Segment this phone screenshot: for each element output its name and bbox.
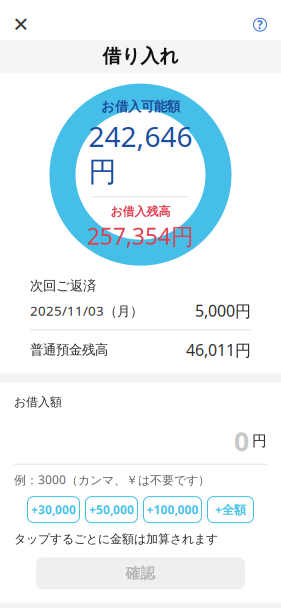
staticText: 借り入れ xyxy=(102,45,178,68)
staticText: 普通預金残高 xyxy=(30,342,108,358)
staticText: ? xyxy=(257,17,263,33)
staticText: +全額 xyxy=(215,502,246,517)
staticText: お借入額 xyxy=(14,394,62,409)
staticText: お借入残高 xyxy=(110,204,170,219)
button[interactable]: 閉じる xyxy=(4,10,38,40)
staticText: お借入可能額 xyxy=(101,98,180,115)
button[interactable]: +30,000 xyxy=(27,497,79,523)
staticText: +100,000 xyxy=(146,502,198,517)
button[interactable]: +100,000 xyxy=(143,497,201,523)
staticText: 確認 xyxy=(125,564,155,582)
staticText: +30,000 xyxy=(31,502,76,517)
staticText: 257,354円 xyxy=(87,221,194,251)
button[interactable]: ヘルプ xyxy=(243,10,277,40)
staticText: タップするごとに金額は加算されます xyxy=(14,532,218,546)
staticText: ✕ xyxy=(12,13,29,36)
staticText: 円 xyxy=(252,432,267,450)
button[interactable]: +50,000 xyxy=(85,497,137,523)
staticText: 242,646円 xyxy=(88,118,192,189)
staticText: +50,000 xyxy=(89,502,134,517)
staticText: 5,000円 xyxy=(195,300,251,321)
staticText: 例：3000（カンマ、￥は不要です） xyxy=(14,472,210,488)
staticText: 2025/11/03（月） xyxy=(30,302,143,319)
staticText: 0 xyxy=(234,423,249,459)
button[interactable]: +全額 xyxy=(207,497,253,523)
staticText: 次回ご返済 xyxy=(30,278,96,294)
staticText: 46,011円 xyxy=(186,339,251,360)
button[interactable]: 確認 xyxy=(36,557,245,589)
